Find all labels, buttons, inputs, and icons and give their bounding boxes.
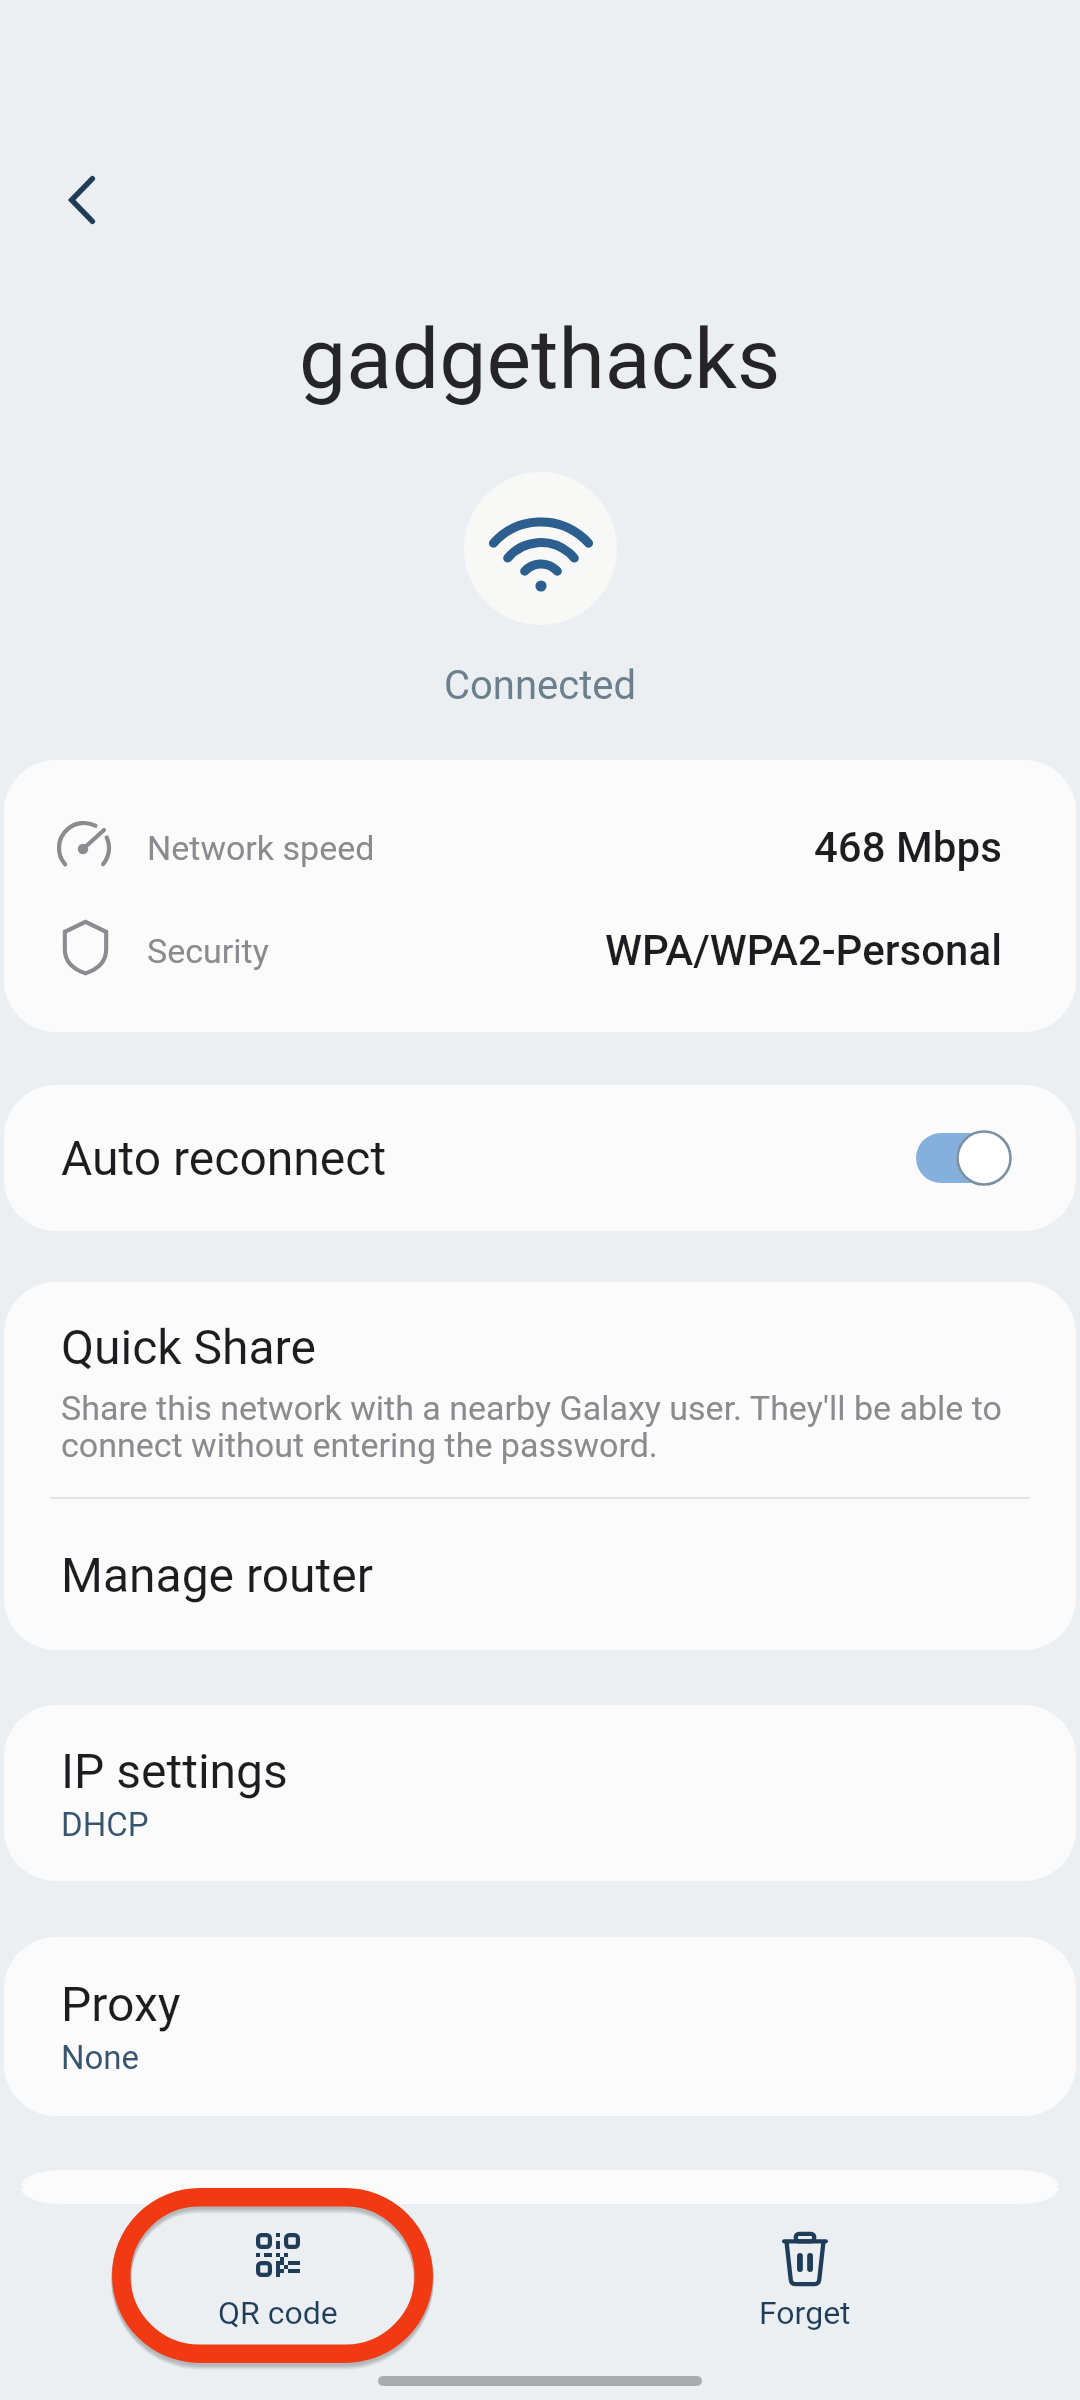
staticText: Share this network with a nearby Galaxy …: [61, 1388, 1018, 1465]
button[interactable]: QR code: [8, 2203, 548, 2363]
staticText: Connected: [444, 662, 637, 709]
button[interactable]: Auto reconnect: [4, 1085, 1076, 1231]
staticText: 468 Mbps: [814, 823, 1002, 872]
staticText: None: [61, 2038, 140, 2077]
staticText: IP settings: [61, 1743, 288, 1799]
staticText: Network speed: [147, 828, 375, 868]
staticText: Auto reconnect: [61, 1130, 387, 1186]
staticText: Quick Share: [61, 1319, 316, 1375]
button[interactable]: Back: [34, 152, 130, 248]
button[interactable]: IP settings: [4, 1705, 1076, 1881]
staticText: Proxy: [61, 1976, 181, 2032]
staticText: Security: [147, 931, 269, 971]
button[interactable]: Forget: [535, 2203, 1075, 2363]
staticText: QR code: [218, 2294, 338, 2332]
staticText: gadgethacks: [299, 310, 781, 408]
staticText: Forget: [759, 2294, 851, 2332]
button[interactable]: Auto reconnect toggle, on: [904, 1123, 1026, 1193]
staticText: WPA/WPA2-Personal: [605, 926, 1002, 975]
button[interactable]: Proxy: [4, 1937, 1076, 2116]
button[interactable]: Quick Share: [4, 1282, 1076, 1497]
staticText: DHCP: [61, 1805, 149, 1844]
button[interactable]: Manage router: [4, 1499, 1076, 1650]
staticText: Manage router: [61, 1547, 373, 1603]
